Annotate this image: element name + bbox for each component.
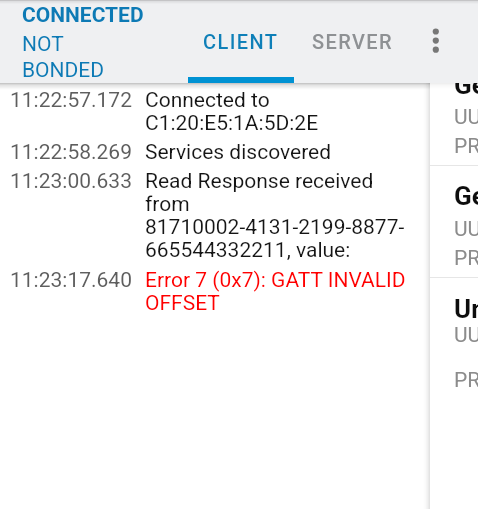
- button[interactable]: 11:22:57.172: [0, 85, 430, 137]
- staticText: NOT BONDED: [22, 32, 105, 82]
- staticText: UUID: 81710001-4131-2199-8877-: [454, 323, 478, 348]
- button[interactable]: Generic Attribute: [430, 0, 478, 30]
- staticText: PRIMARY SERVICE: [454, 368, 478, 393]
- button[interactable]: More options: [414, 19, 458, 63]
- staticText: SERVER: [312, 30, 394, 53]
- staticText: 11:22:57.172: [10, 88, 132, 113]
- staticText: 11:23:00.633: [10, 169, 132, 194]
- button[interactable]: CLIENT: [188, 19, 294, 64]
- button[interactable]: 11:23:17.640: [0, 265, 430, 317]
- staticText: UUID: 0x1801: [454, 217, 478, 242]
- staticText: UUID: 0x1800: [454, 105, 478, 130]
- staticText: CONNECTED: [22, 3, 144, 28]
- staticText: Generic Access: [454, 70, 478, 100]
- staticText: CLIENT: [203, 30, 279, 53]
- staticText: Unknown Service: [454, 294, 478, 324]
- staticText: PRIMARY SERVICE: [454, 246, 478, 271]
- button[interactable]: 11:22:58.269: [0, 137, 430, 166]
- staticText: Services discovered: [145, 140, 332, 165]
- staticText: Error 7 (0x7): GATT INVALID OFFSET: [145, 268, 406, 315]
- button[interactable]: Generic Access: [430, 0, 478, 30]
- staticText: PRIMARY SERVICE: [454, 134, 478, 159]
- staticText: Generic Attribute: [454, 181, 478, 211]
- button[interactable]: SERVER: [297, 19, 409, 64]
- staticText: Connected to C1:20:E5:1A:5D:2E: [145, 88, 319, 135]
- button[interactable]: CONNECTED: [22, 3, 144, 78]
- staticText: 11:23:17.640: [10, 268, 132, 293]
- button[interactable]: Unknown Service: [430, 0, 478, 30]
- button[interactable]: 11:23:00.633: [0, 166, 430, 265]
- staticText: 11:22:58.269: [10, 140, 132, 165]
- staticText: Read Response received from 81710002-413…: [145, 169, 405, 262]
